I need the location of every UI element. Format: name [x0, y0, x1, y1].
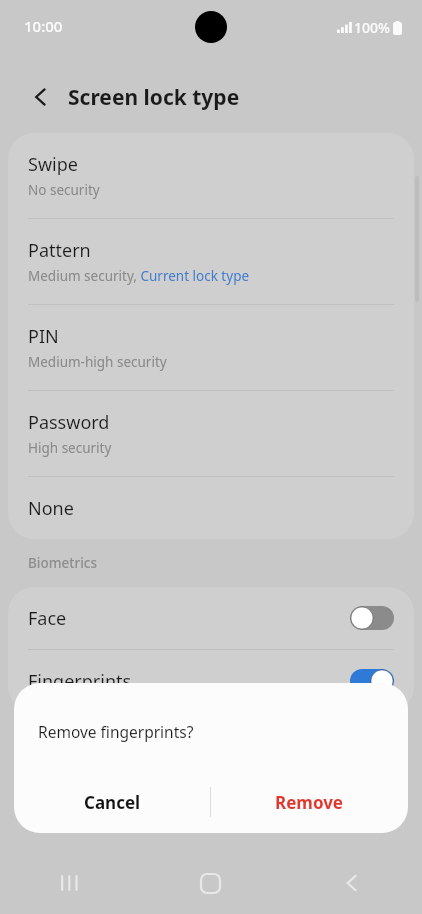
button[interactable]: Pattern: [8, 219, 414, 304]
button[interactable]: Cancel: [14, 771, 210, 833]
staticText: Face: [28, 606, 350, 631]
staticText: High security: [28, 439, 112, 457]
staticText: Fingerprints: [28, 669, 350, 694]
staticText: Screen lock type: [68, 83, 240, 112]
staticText: Password: [28, 410, 110, 435]
staticText: Biometrics: [28, 554, 97, 572]
staticText: Pattern: [28, 238, 91, 263]
staticText: Remove fingerprints?: [38, 721, 194, 742]
staticText: 10:00: [24, 16, 63, 36]
button[interactable]: Swipe: [8, 133, 414, 218]
staticText: Medium security, Current lock type: [28, 267, 250, 285]
button[interactable]: Recents: [0, 852, 140, 914]
staticText: Swipe: [28, 152, 78, 177]
staticText: None: [28, 496, 74, 521]
button[interactable]: Remove: [211, 771, 408, 833]
button[interactable]: PIN: [8, 305, 414, 390]
staticText: No security: [28, 181, 100, 199]
staticText: Cancel: [84, 791, 141, 814]
staticText: Remove: [275, 791, 344, 814]
button[interactable]: Password: [8, 391, 414, 476]
button[interactable]: Back: [20, 76, 62, 118]
button[interactable]: None: [8, 477, 414, 539]
staticText: 100%: [354, 18, 390, 37]
staticText: Medium-high security: [28, 353, 167, 371]
button[interactable]: Face: [8, 587, 414, 649]
staticText: PIN: [28, 324, 59, 349]
button[interactable]: Fingerprints: [8, 650, 414, 712]
button[interactable]: Home: [140, 852, 281, 914]
